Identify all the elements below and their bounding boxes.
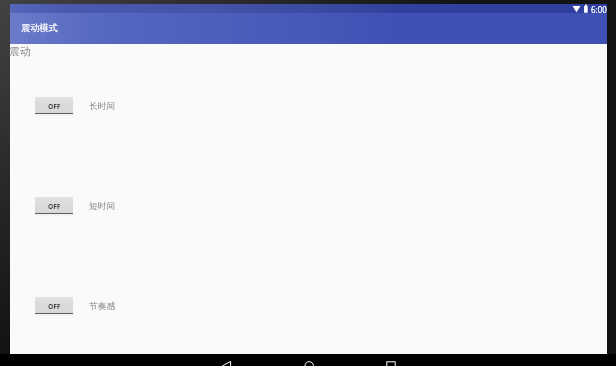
staticText: 震动模式 <box>21 22 58 34</box>
staticText: OFF <box>48 202 61 211</box>
staticText: OFF <box>48 302 61 311</box>
button[interactable]: OFF <box>35 297 73 314</box>
staticText: 节奏感 <box>89 301 116 312</box>
staticText: 震动 <box>9 45 31 59</box>
staticText: OFF <box>48 102 61 111</box>
button[interactable]: OFF <box>35 197 73 214</box>
staticText: 长时间 <box>89 101 116 112</box>
button[interactable]: Recents <box>371 354 411 366</box>
button[interactable]: Back <box>206 354 246 366</box>
button[interactable]: OFF <box>35 97 73 114</box>
button[interactable]: Home <box>289 354 329 366</box>
staticText: 6:00 <box>591 4 607 15</box>
staticText: 短时间 <box>89 201 116 212</box>
